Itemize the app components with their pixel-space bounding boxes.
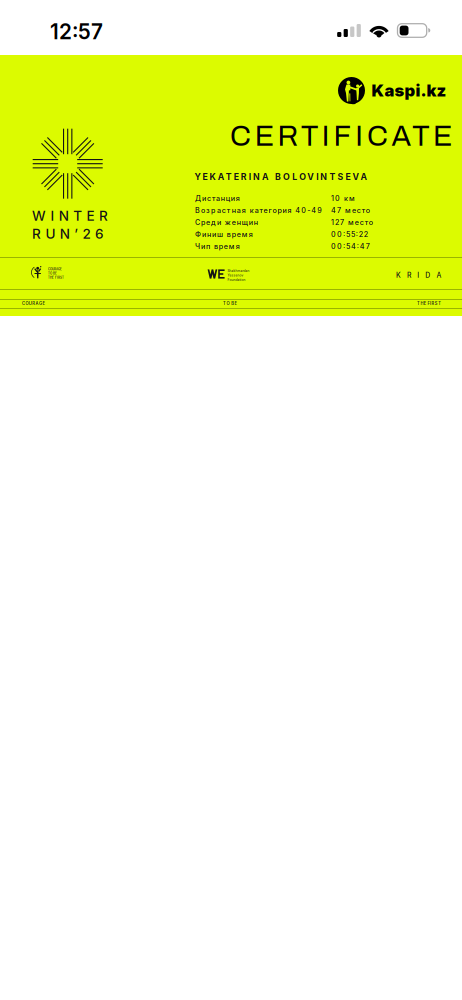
staticText: YEKATERINA BOLOVINTSEVA [194,171,400,182]
staticText: Foundation [227,278,245,282]
staticText: K R I D A [396,271,453,279]
staticText: 00:55:22 [331,230,380,239]
staticText: Среди женщин [195,218,269,227]
staticText: THE FIRST [48,276,64,279]
staticText: Дистанция [195,194,252,203]
staticText: CERTIFICATE [230,120,462,152]
staticText: Финиш время [195,230,265,239]
staticText: 12:57 [50,19,103,44]
staticText: 127 место [331,218,385,227]
staticText: Kaspi.kz [371,80,446,100]
staticText: WINTER [32,207,133,224]
staticText: THE FIRST [417,301,444,306]
staticText: TO BE [48,272,57,275]
staticText: 00:54:47 [331,242,382,251]
button[interactable]: Kaspi.kz [338,77,446,104]
staticText: COURAGE [48,267,62,271]
staticText: Yessenov [227,273,243,277]
staticText: Возрастная категория 40-49 [195,206,334,215]
staticText: 10 км [331,194,367,203]
staticText: Чип время [195,242,252,251]
staticText: RUN’26 [32,225,129,242]
staticText: Shakhmardan [227,269,249,273]
staticText: 47 место [331,206,382,215]
staticText: TO BE [223,301,239,306]
staticText: COURAGE [22,301,47,306]
